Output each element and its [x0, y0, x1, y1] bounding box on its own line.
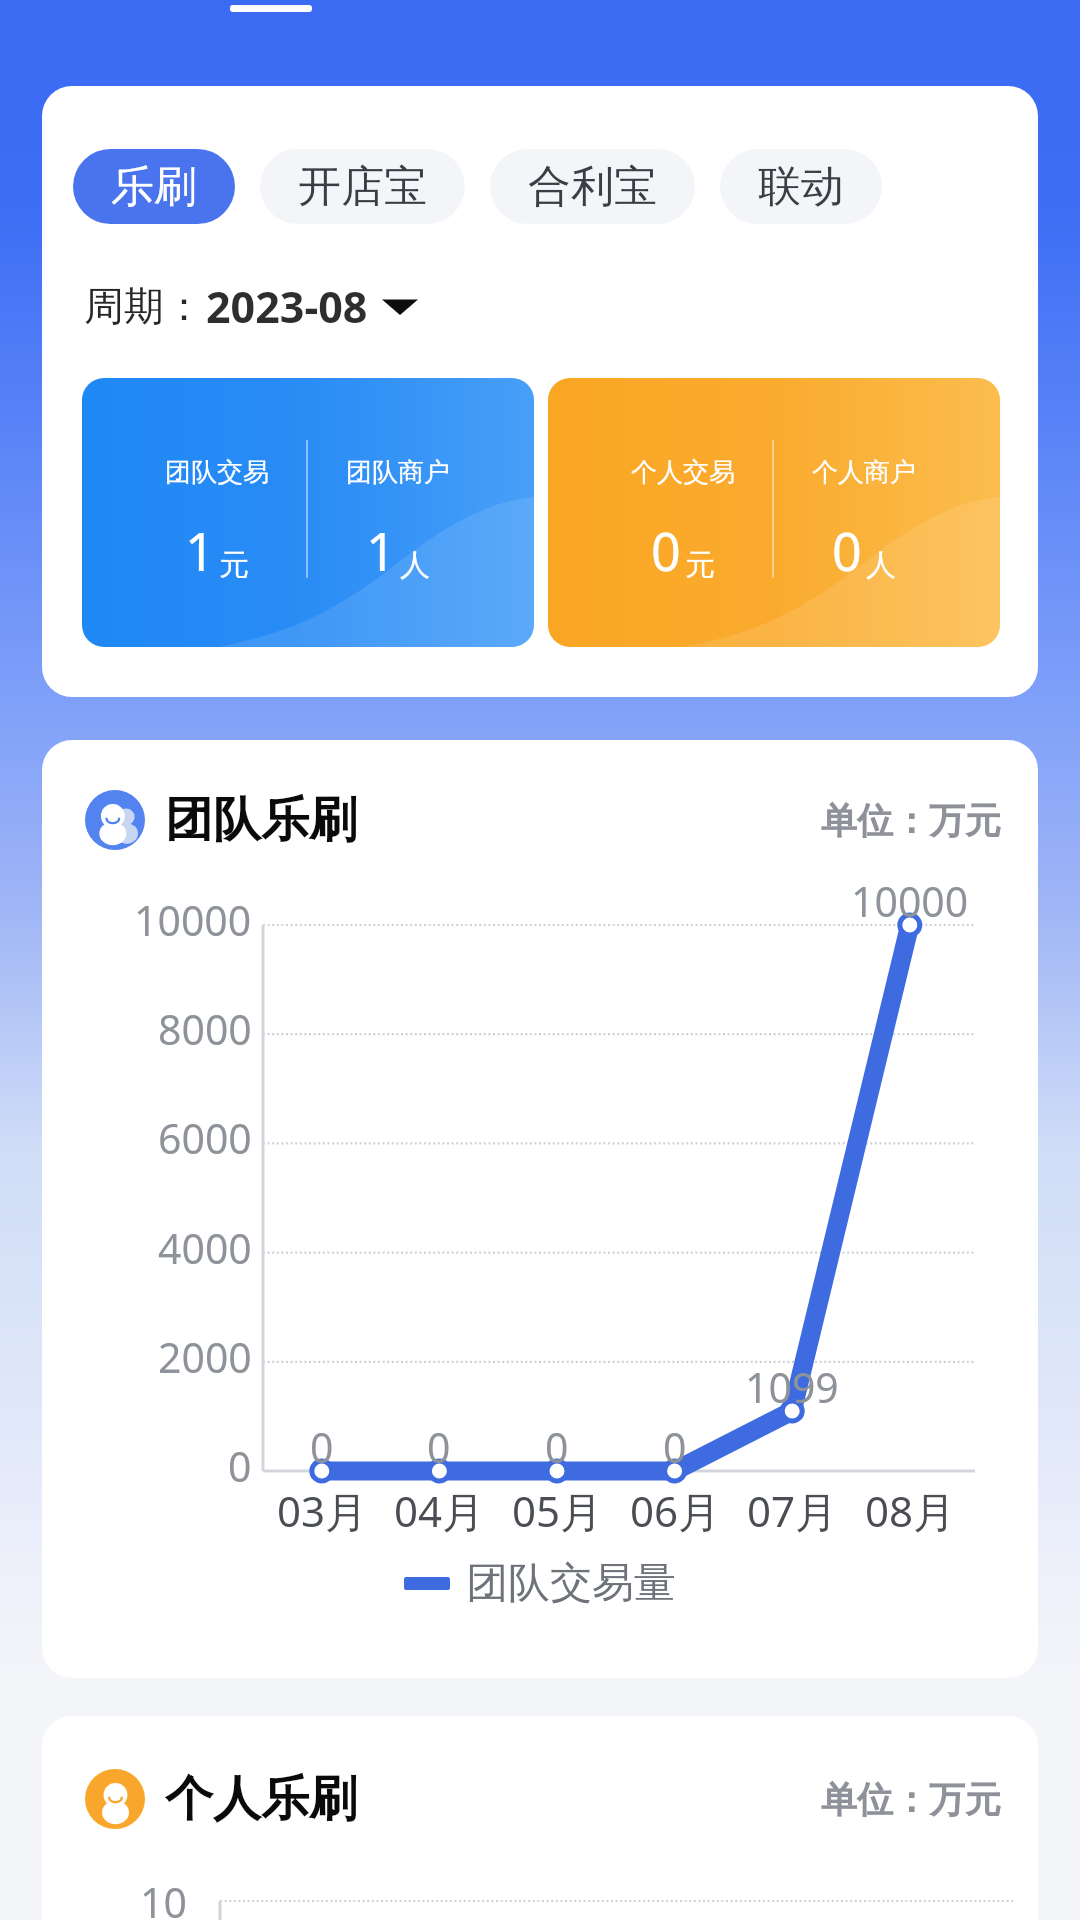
staticText: 1099 — [745, 1359, 839, 1415]
button[interactable]: 团队交易 — [82, 378, 534, 647]
staticText: 团队商户 — [346, 456, 450, 489]
staticText: 0 — [545, 1419, 569, 1475]
staticText: 人 — [400, 546, 430, 584]
staticText: 个人交易 — [631, 456, 735, 489]
staticText: 元 — [219, 546, 249, 584]
staticText: 乐刷 — [111, 160, 197, 214]
staticText: 个人乐刷 — [165, 1769, 357, 1829]
staticText: 团队乐刷 — [165, 790, 357, 850]
staticText: 1 — [185, 515, 215, 586]
staticText: 06月 — [630, 1482, 721, 1539]
staticText: 元 — [685, 546, 715, 584]
staticText: 开店宝 — [298, 160, 427, 214]
staticText: 03月 — [277, 1482, 368, 1539]
staticText: 单位：万元 — [821, 1777, 1001, 1822]
staticText: 6000 — [158, 1110, 252, 1166]
staticText: 0 — [651, 515, 681, 586]
button[interactable]: 周期： — [84, 271, 418, 341]
staticText: 10000 — [134, 892, 252, 948]
button[interactable]: 乐刷 — [73, 149, 235, 224]
staticText: 个人商户 — [812, 456, 916, 489]
button[interactable]: 个人交易 — [548, 378, 1000, 647]
other: 个人乐刷 — [85, 1769, 145, 1829]
staticText: 0 — [310, 1419, 334, 1475]
staticText: 4000 — [158, 1220, 252, 1276]
staticText: 10 — [140, 1874, 187, 1920]
staticText: 周期： — [84, 281, 204, 331]
staticText: 0 — [228, 1438, 252, 1494]
staticText: 团队交易 — [165, 456, 269, 489]
staticText: 单位：万元 — [821, 798, 1001, 843]
staticText: 0 — [427, 1419, 451, 1475]
staticText: 8000 — [158, 1001, 252, 1057]
staticText: 08月 — [865, 1482, 956, 1539]
staticText: 合利宝 — [528, 160, 657, 214]
staticText: 人 — [866, 546, 896, 584]
staticText: 04月 — [394, 1482, 485, 1539]
staticText: 0 — [832, 515, 862, 586]
button[interactable]: 合利宝 — [490, 149, 695, 224]
staticText: 2000 — [158, 1329, 252, 1385]
staticText: 0 — [663, 1419, 687, 1475]
button[interactable]: 开店宝 — [260, 149, 465, 224]
staticText: 10000 — [851, 873, 969, 929]
staticText: 团队交易量 — [466, 1557, 676, 1610]
staticText: 07月 — [747, 1482, 838, 1539]
staticText: 2023-08 — [206, 277, 368, 336]
staticText: 05月 — [512, 1482, 603, 1539]
other: 团队乐刷 — [85, 790, 145, 850]
button[interactable]: 联动 — [720, 149, 882, 224]
staticText: 1 — [366, 515, 396, 586]
staticText: 联动 — [758, 160, 844, 214]
